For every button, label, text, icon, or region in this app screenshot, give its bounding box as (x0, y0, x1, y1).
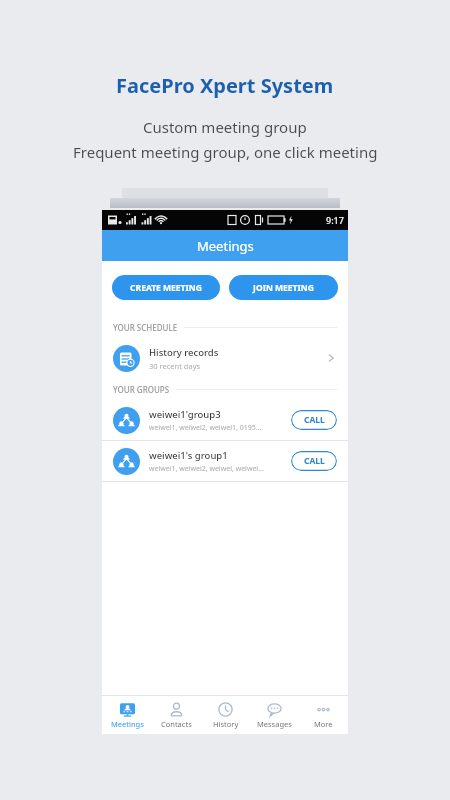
staticText: Meetings (197, 237, 254, 255)
button[interactable]: CALL (291, 410, 337, 430)
staticText: weiwei1, weiwei2, weiwei, weiwei... (149, 464, 264, 474)
staticText: weiwei1, weiwei2, weiwei1, 0195... (149, 423, 262, 433)
button[interactable]: Meetings (102, 696, 152, 734)
staticText: Frequent meeting group, one click meetin… (73, 142, 378, 162)
staticText: JOIN MEETING (253, 282, 314, 294)
button[interactable]: History records (102, 338, 348, 378)
staticText: YOUR SCHEDULE (113, 322, 178, 333)
staticText: Contacts (161, 719, 192, 729)
button[interactable]: CALL (291, 451, 337, 471)
staticText: CREATE MEETING (130, 282, 202, 294)
staticText: YOUR GROUPS (113, 384, 170, 395)
staticText: Meetings (111, 719, 144, 729)
staticText: CALL (304, 414, 325, 426)
button[interactable]: Messages (250, 696, 299, 734)
button[interactable]: CREATE MEETING (112, 275, 220, 300)
button[interactable]: weiwei1'group3 (102, 400, 348, 440)
button[interactable]: History (201, 696, 250, 734)
staticText: Custom meeting group (143, 117, 307, 137)
staticText: Messages (257, 719, 292, 729)
staticText: More (314, 719, 333, 729)
staticText: 30 recent days (149, 361, 201, 371)
staticText: CALL (304, 455, 325, 467)
staticText: 9:17 (326, 214, 344, 226)
button[interactable]: weiwei1's group1 (102, 441, 348, 481)
staticText: FacePro Xpert System (116, 72, 334, 99)
staticText: History (213, 719, 239, 729)
staticText: History records (149, 346, 219, 359)
button[interactable]: More (299, 696, 348, 734)
button[interactable]: JOIN MEETING (229, 275, 338, 300)
button[interactable]: Contacts (152, 696, 201, 734)
staticText: weiwei1'group3 (149, 408, 221, 421)
staticText: weiwei1's group1 (149, 449, 228, 462)
